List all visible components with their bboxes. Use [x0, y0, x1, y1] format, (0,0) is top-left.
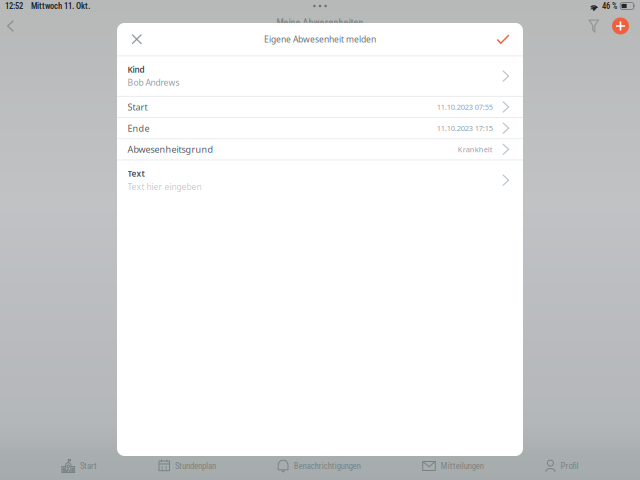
staticText: 11.10.2023 17:15	[437, 123, 493, 133]
button[interactable]: Back	[0, 13, 21, 39]
staticText: Start	[127, 101, 147, 113]
staticText: Meine Abwesenheiten	[276, 16, 363, 28]
staticText: Text hier eingeben	[127, 181, 201, 192]
button[interactable]: Save	[488, 22, 523, 56]
staticText: Stundenplan	[175, 461, 216, 471]
button[interactable]: Filter	[581, 13, 606, 38]
staticText: 11	[160, 464, 168, 473]
staticText: 46 %	[602, 1, 617, 11]
staticText: Benachrichtigungen	[294, 461, 361, 471]
staticText: Mittwoch 11. Okt.	[31, 1, 90, 11]
staticText: Profil	[561, 461, 579, 471]
button[interactable]: Text	[117, 160, 523, 200]
staticText: Start	[80, 461, 97, 471]
button[interactable]: Abwesenheitsgrund	[117, 139, 523, 159]
button[interactable]: Profil	[545, 453, 579, 479]
button[interactable]: Mitteilungen	[422, 453, 484, 479]
staticText: 12:52	[5, 1, 23, 11]
staticText: Text	[127, 168, 144, 179]
staticText: Bob Andrews	[127, 77, 179, 88]
staticText: Ende	[127, 122, 149, 134]
staticText: Eigene Abwesenheit melden	[264, 33, 376, 45]
button[interactable]: Kind	[117, 56, 523, 96]
staticText: Abwesenheitsgrund	[127, 143, 213, 155]
staticText: Kind	[127, 64, 144, 75]
button[interactable]: 11	[158, 453, 216, 479]
button[interactable]: Close	[117, 23, 152, 55]
button[interactable]: Add	[606, 12, 640, 39]
staticText: 11.10.2023 07:55	[437, 102, 493, 112]
button[interactable]: Ende	[117, 118, 523, 138]
staticText: Mitteilungen	[441, 461, 484, 471]
button[interactable]: Start	[61, 453, 97, 479]
staticText: Krankheit	[458, 144, 493, 154]
button[interactable]: Start	[117, 97, 523, 117]
button[interactable]: Benachrichtigungen	[277, 453, 361, 479]
